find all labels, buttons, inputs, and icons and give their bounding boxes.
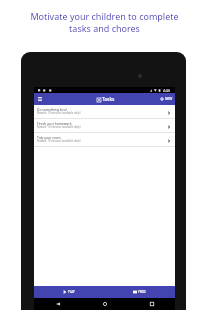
staticText: Tidy your room bbox=[37, 135, 61, 139]
button[interactable]: Finish your homework bbox=[34, 119, 175, 133]
staticText: Finish your homework bbox=[37, 121, 72, 125]
staticText: Reward: 10 minutes (available daily) bbox=[37, 139, 81, 143]
staticText: Do something kind bbox=[37, 107, 67, 111]
staticText: Reward: 10 minutes (available daily) bbox=[37, 111, 81, 115]
staticText: Reward: 10 minutes (available daily) bbox=[37, 125, 81, 129]
staticText: 4:44 bbox=[163, 88, 170, 93]
button[interactable]: PLAY bbox=[34, 286, 104, 298]
staticText: PRIZE bbox=[138, 290, 146, 294]
button[interactable]: Recents bbox=[128, 298, 175, 310]
staticText: Tasks bbox=[102, 96, 115, 103]
staticText: PLAY bbox=[68, 290, 75, 294]
button[interactable]: Tidy your room bbox=[34, 133, 175, 147]
button[interactable]: Menu bbox=[36, 95, 44, 103]
staticText: NEW bbox=[165, 97, 173, 101]
button[interactable]: NEW bbox=[160, 97, 173, 101]
button[interactable]: Home bbox=[81, 298, 128, 310]
button[interactable]: PRIZE bbox=[104, 286, 175, 298]
staticText: Motivate your children to complete tasks… bbox=[0, 10, 209, 35]
button[interactable]: Back bbox=[34, 298, 81, 310]
button[interactable]: Do something kind bbox=[34, 105, 175, 119]
